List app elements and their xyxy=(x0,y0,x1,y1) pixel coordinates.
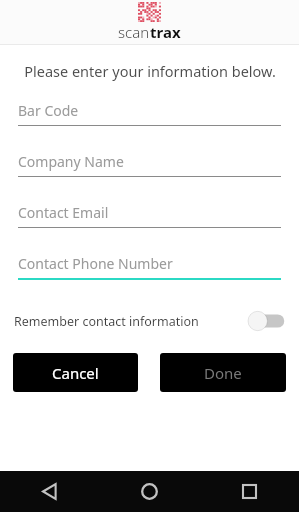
button[interactable]: Recent apps xyxy=(199,471,299,512)
staticText: Done xyxy=(204,363,242,383)
staticText: Remember contact information xyxy=(14,313,199,330)
button[interactable]: Contact Email xyxy=(18,201,281,228)
button[interactable]: Remember contact information xyxy=(0,306,299,336)
staticText: Please enter your information below. xyxy=(24,61,276,81)
button[interactable]: Home xyxy=(99,471,199,512)
staticText: scan xyxy=(118,22,150,42)
button[interactable]: Back xyxy=(0,471,99,512)
staticText: Bar Code xyxy=(18,101,79,120)
staticText: Contact Email xyxy=(18,203,109,222)
staticText: Contact Phone Number xyxy=(18,254,173,273)
button[interactable]: Done xyxy=(160,353,286,392)
button[interactable]: Cancel xyxy=(13,353,138,392)
button[interactable]: Remember contact information toggle xyxy=(247,310,285,332)
staticText: Cancel xyxy=(52,363,99,383)
staticText: trax xyxy=(150,22,181,42)
staticText: Company Name xyxy=(18,152,124,171)
button[interactable]: Contact Phone Number xyxy=(18,252,281,280)
button[interactable]: Bar Code xyxy=(18,99,281,126)
button[interactable]: Company Name xyxy=(18,150,281,177)
